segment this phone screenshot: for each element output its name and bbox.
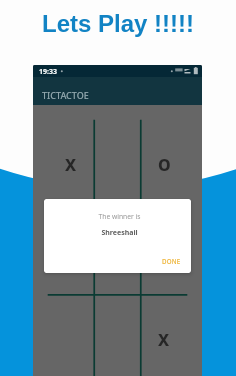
staticText: 19:33 (39, 67, 57, 77)
staticText: DONE (162, 257, 181, 265)
button[interactable]: Cell X (149, 325, 179, 355)
staticText: O (158, 154, 171, 176)
button[interactable]: DONE (156, 253, 187, 269)
button[interactable]: Cell O (149, 150, 179, 180)
staticText: The winner is (46, 212, 191, 221)
staticText: X (65, 154, 77, 176)
staticText: TICTACTOE (42, 89, 89, 101)
staticText: Shreeshail (46, 228, 191, 238)
staticText: Lets Play !!!!! (42, 10, 195, 37)
button[interactable]: Cell X (56, 150, 86, 180)
staticText: X (158, 329, 170, 351)
